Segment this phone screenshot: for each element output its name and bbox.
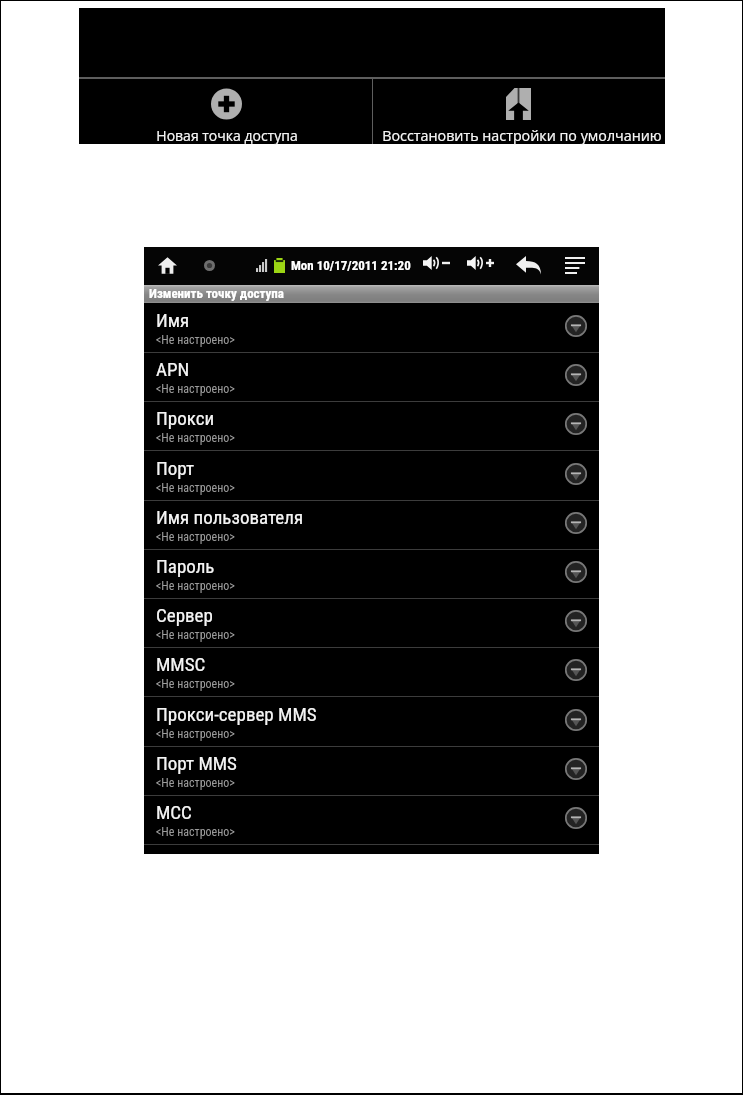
button[interactable]: Home	[158, 256, 177, 275]
button[interactable]: Volume down	[423, 256, 450, 270]
button[interactable]: APN	[144, 353, 599, 401]
button[interactable]: MMSC	[144, 648, 599, 696]
staticText: <Не настроено>	[156, 431, 235, 445]
staticText: <Не настроено>	[156, 776, 235, 790]
staticText: Имя пользователя	[156, 506, 304, 528]
button[interactable]: MCC	[144, 796, 599, 844]
button[interactable]: Прокси-сервер MMS	[144, 698, 599, 746]
button[interactable]: Имя	[144, 304, 599, 352]
staticText: <Не настроено>	[156, 727, 235, 741]
staticText: <Не настроено>	[156, 579, 235, 593]
button[interactable]: Прокси	[144, 402, 599, 450]
button[interactable]: Recent apps	[204, 260, 215, 271]
button[interactable]: Новая точка доступа	[79, 79, 372, 144]
staticText: APN	[156, 358, 190, 380]
button[interactable]: Имя пользователя	[144, 501, 599, 549]
staticText: <Не настроено>	[156, 333, 235, 347]
staticText: Восстановить настройки по умолчанию	[382, 126, 662, 145]
button[interactable]: Menu	[565, 257, 585, 274]
staticText: Новая точка доступа	[156, 126, 298, 145]
button[interactable]: Порт	[144, 452, 599, 500]
staticText: MCC	[156, 801, 192, 823]
staticText: <Не настроено>	[156, 382, 235, 396]
staticText: <Не настроено>	[156, 677, 235, 691]
button[interactable]: Back	[516, 256, 541, 275]
staticText: Изменить точку доступа	[149, 286, 284, 301]
button[interactable]: Порт MMS	[144, 747, 599, 795]
staticText: Прокси-сервер MMS	[156, 703, 317, 725]
button[interactable]: Пароль	[144, 550, 599, 598]
button[interactable]: Сервер	[144, 599, 599, 647]
staticText: Пароль	[156, 555, 215, 577]
staticText: <Не настроено>	[156, 481, 235, 495]
staticText: Имя	[156, 309, 190, 331]
staticText: Сервер	[156, 604, 213, 626]
staticText: Прокси	[156, 407, 215, 429]
staticText: <Не настроено>	[156, 825, 235, 839]
staticText: Mon 10/17/2011 21:20	[291, 258, 411, 273]
staticText: <Не настроено>	[156, 628, 235, 642]
button[interactable]: Восстановить настройки по умолчанию	[373, 79, 665, 144]
staticText: Порт MMS	[156, 752, 237, 774]
staticText: MMSC	[156, 653, 206, 675]
staticText: <Не настроено>	[156, 530, 235, 544]
button[interactable]: Volume up	[467, 256, 494, 270]
staticText: Порт	[156, 457, 195, 479]
